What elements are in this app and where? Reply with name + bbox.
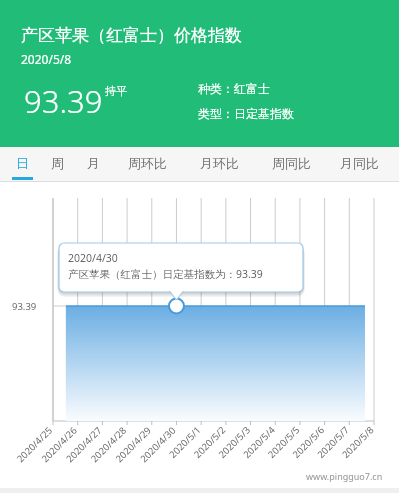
staticText: 日	[16, 155, 29, 171]
button[interactable]: 周同比	[270, 147, 313, 182]
staticText: 月环比	[200, 155, 239, 171]
button[interactable]: 月同比	[338, 147, 381, 182]
staticText: 持平	[105, 84, 127, 98]
staticText: 周	[51, 155, 64, 171]
button[interactable]: 周	[47, 147, 68, 182]
staticText: 周环比	[128, 155, 167, 171]
button[interactable]: 月环比	[198, 147, 241, 182]
button[interactable]: 日	[12, 147, 33, 182]
staticText: 种类：红富士	[198, 81, 270, 96]
staticText: 月同比	[340, 155, 379, 171]
button[interactable]: 周环比	[126, 147, 169, 182]
button[interactable]: 月	[83, 147, 104, 182]
staticText: 93.39	[24, 80, 103, 122]
staticText: 类型：日定基指数	[198, 106, 294, 121]
staticText: 产区苹果（红富士）价格指数	[21, 25, 242, 46]
staticText: 周同比	[272, 155, 311, 171]
staticText: 月	[87, 155, 100, 171]
staticText: 2020/5/8	[21, 51, 72, 67]
